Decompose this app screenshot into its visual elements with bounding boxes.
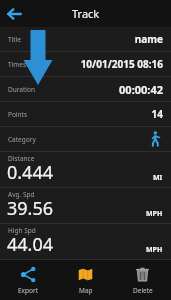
staticText: Timestamp [8,60,43,69]
staticText: High Spd [8,226,36,235]
button[interactable]: Timestamp [0,52,171,76]
staticText: Map [79,286,93,295]
button[interactable]: High Spd [0,224,171,259]
staticText: Points [8,110,28,119]
staticText: name [134,32,163,46]
staticText: Duration [8,85,35,94]
button[interactable]: Map [57,260,114,300]
button[interactable]: Category [0,127,171,151]
staticText: Delete [133,286,153,295]
staticText: 14 [151,107,163,121]
staticText: 10/01/2015 08:16 [80,57,163,71]
button[interactable]: Delete [114,260,171,300]
button[interactable]: Back [5,5,23,23]
staticText: 39.56 [7,196,54,221]
button[interactable]: Avg. Spd [0,188,171,223]
staticText: 00:00:42 [119,82,163,97]
button[interactable]: Duration [0,77,171,101]
staticText: Export [18,286,39,295]
staticText: Category [8,135,36,144]
button[interactable]: Export [0,260,57,300]
staticText: MPH [146,209,163,219]
staticText: 44.04 [7,232,54,257]
staticText: Distance [8,154,35,163]
staticText: MI [153,173,163,183]
staticText: MPH [146,245,163,255]
button[interactable]: Points [0,102,171,126]
button[interactable]: Distance [0,152,171,187]
staticText: 0.444 [7,160,54,185]
staticText: Avg. Spd [8,190,35,199]
staticText: Title [8,35,21,44]
button[interactable]: Title [0,27,171,51]
staticText: Track [72,6,100,21]
other: Walking category [147,131,163,147]
